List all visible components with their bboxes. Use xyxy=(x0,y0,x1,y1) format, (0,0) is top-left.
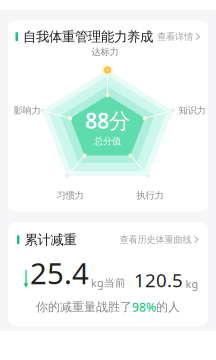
staticText: 25.4 xyxy=(30,253,89,292)
staticText: kg xyxy=(185,277,198,291)
staticText: 查看历史体重曲线 xyxy=(119,234,191,245)
staticText: 当前 xyxy=(104,276,126,289)
staticText: 知识力 xyxy=(178,105,205,116)
staticText: 习惯力 xyxy=(56,190,83,201)
staticText: 的人 xyxy=(156,300,180,314)
staticText: 120.5 xyxy=(134,268,183,292)
button[interactable]: 查看详情 xyxy=(157,28,200,45)
button[interactable]: 查看历史体重曲线 xyxy=(119,231,199,248)
staticText: 影响力 xyxy=(13,105,40,116)
staticText: 累计减重 xyxy=(24,231,76,248)
staticText: 总分值 xyxy=(94,135,121,147)
staticText: 达标力 xyxy=(91,46,118,58)
staticText: 查看详情 xyxy=(157,31,193,42)
staticText: 自我体重管理能力养成 xyxy=(23,28,153,45)
staticText: 98% xyxy=(132,299,156,315)
staticText: 88分 xyxy=(85,106,130,134)
staticText: kg xyxy=(91,276,104,290)
staticText: 你的减重量战胜了 xyxy=(36,300,132,314)
staticText: 执行力 xyxy=(136,190,163,201)
